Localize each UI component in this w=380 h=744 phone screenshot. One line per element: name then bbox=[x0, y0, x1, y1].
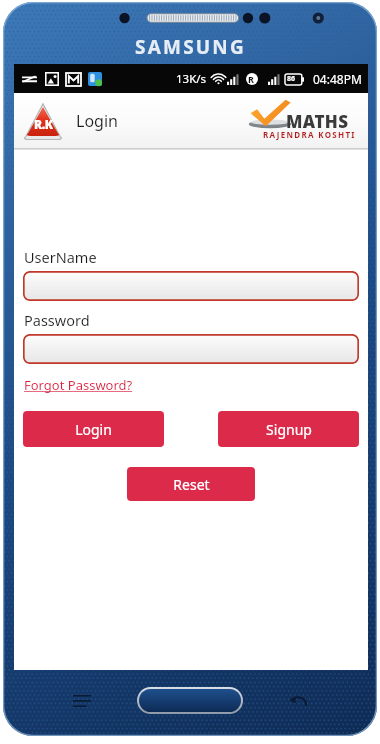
staticText: Reset bbox=[173, 475, 210, 494]
button[interactable]: Reset bbox=[127, 467, 255, 501]
button[interactable]: RK Home bbox=[20, 98, 66, 144]
button[interactable]: Forgot Password? bbox=[24, 376, 133, 394]
staticText: Forgot Password? bbox=[24, 376, 133, 394]
staticText: MATHS bbox=[286, 110, 349, 133]
staticText: Signup bbox=[266, 420, 312, 439]
button[interactable] bbox=[23, 271, 359, 301]
staticText: Login bbox=[76, 110, 118, 132]
staticText: 86 bbox=[287, 74, 296, 84]
staticText: RAJENDRA KOSHTI bbox=[263, 129, 356, 140]
staticText: R bbox=[248, 73, 254, 85]
button[interactable]: Login bbox=[23, 411, 164, 447]
button[interactable]: Home bbox=[139, 689, 241, 712]
staticText: UserName bbox=[24, 247, 97, 267]
staticText: 04:48PM bbox=[313, 71, 362, 87]
staticText: Login bbox=[75, 420, 112, 439]
staticText: Password bbox=[24, 310, 90, 330]
staticText: SAMSUNG bbox=[135, 34, 246, 60]
staticText: 13K/s bbox=[176, 71, 207, 87]
button[interactable]: Back bbox=[243, 688, 353, 714]
button[interactable]: Signup bbox=[218, 411, 359, 447]
button[interactable]: Menu bbox=[27, 688, 137, 714]
button[interactable] bbox=[23, 334, 359, 364]
button[interactable]: RK Maths Rajendra Koshti bbox=[246, 98, 364, 144]
staticText: R.K bbox=[34, 116, 53, 132]
